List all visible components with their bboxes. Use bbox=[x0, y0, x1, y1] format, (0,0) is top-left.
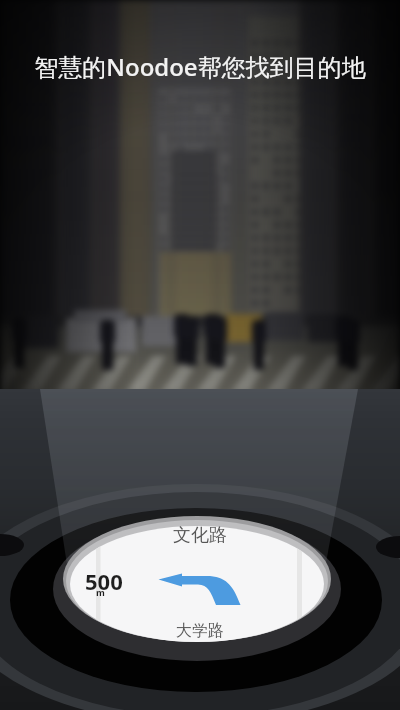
staticText: 500 bbox=[85, 566, 123, 596]
staticText: 智慧的Noodoe帮您找到目的地 bbox=[34, 50, 366, 83]
staticText: 文化路 bbox=[173, 524, 227, 547]
staticText: 大学路 bbox=[176, 621, 224, 641]
staticText: m bbox=[96, 586, 105, 598]
